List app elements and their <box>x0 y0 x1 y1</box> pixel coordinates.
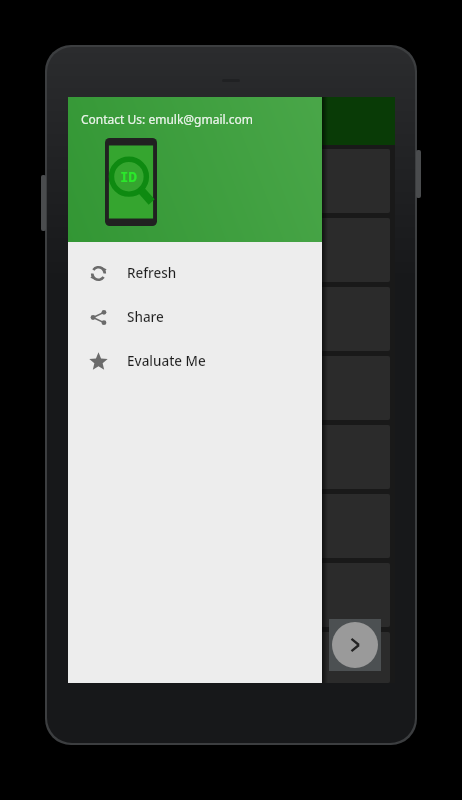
staticText: Refresh <box>127 264 177 282</box>
button[interactable] <box>73 563 390 627</box>
button[interactable] <box>73 632 390 683</box>
staticText: ID <box>120 167 137 186</box>
button[interactable] <box>73 218 390 282</box>
button[interactable] <box>73 356 390 420</box>
button[interactable] <box>68 97 395 145</box>
button[interactable]: Next <box>329 619 381 671</box>
button[interactable] <box>73 494 390 558</box>
button[interactable]: Contact Us: emulk@gmail.com <box>68 97 322 242</box>
staticText: Evaluate Me <box>127 352 206 370</box>
button[interactable]: Evaluate Me <box>68 339 322 383</box>
button[interactable] <box>73 149 390 213</box>
button[interactable] <box>73 287 390 351</box>
staticText: Share <box>127 308 164 326</box>
button[interactable]: Refresh <box>68 251 322 295</box>
button[interactable] <box>73 425 390 489</box>
staticText: Contact Us: emulk@gmail.com <box>81 111 254 127</box>
button[interactable]: Share <box>68 295 322 339</box>
